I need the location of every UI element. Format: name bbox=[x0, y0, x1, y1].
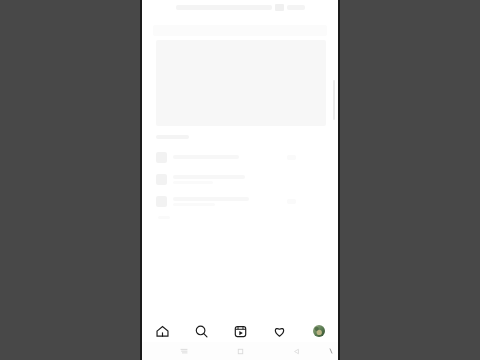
button[interactable]: Profile bbox=[299, 320, 338, 342]
button[interactable]: Recents bbox=[156, 342, 212, 360]
button[interactable]: Search bbox=[182, 320, 221, 342]
button[interactable] bbox=[142, 148, 338, 166]
button[interactable] bbox=[142, 3, 338, 12]
button[interactable]: Activity bbox=[260, 320, 299, 342]
button[interactable]: Home bbox=[142, 320, 182, 342]
button[interactable]: Home bbox=[212, 342, 268, 360]
button[interactable] bbox=[142, 192, 338, 210]
button[interactable]: Reels bbox=[221, 320, 260, 342]
button[interactable] bbox=[142, 170, 338, 188]
